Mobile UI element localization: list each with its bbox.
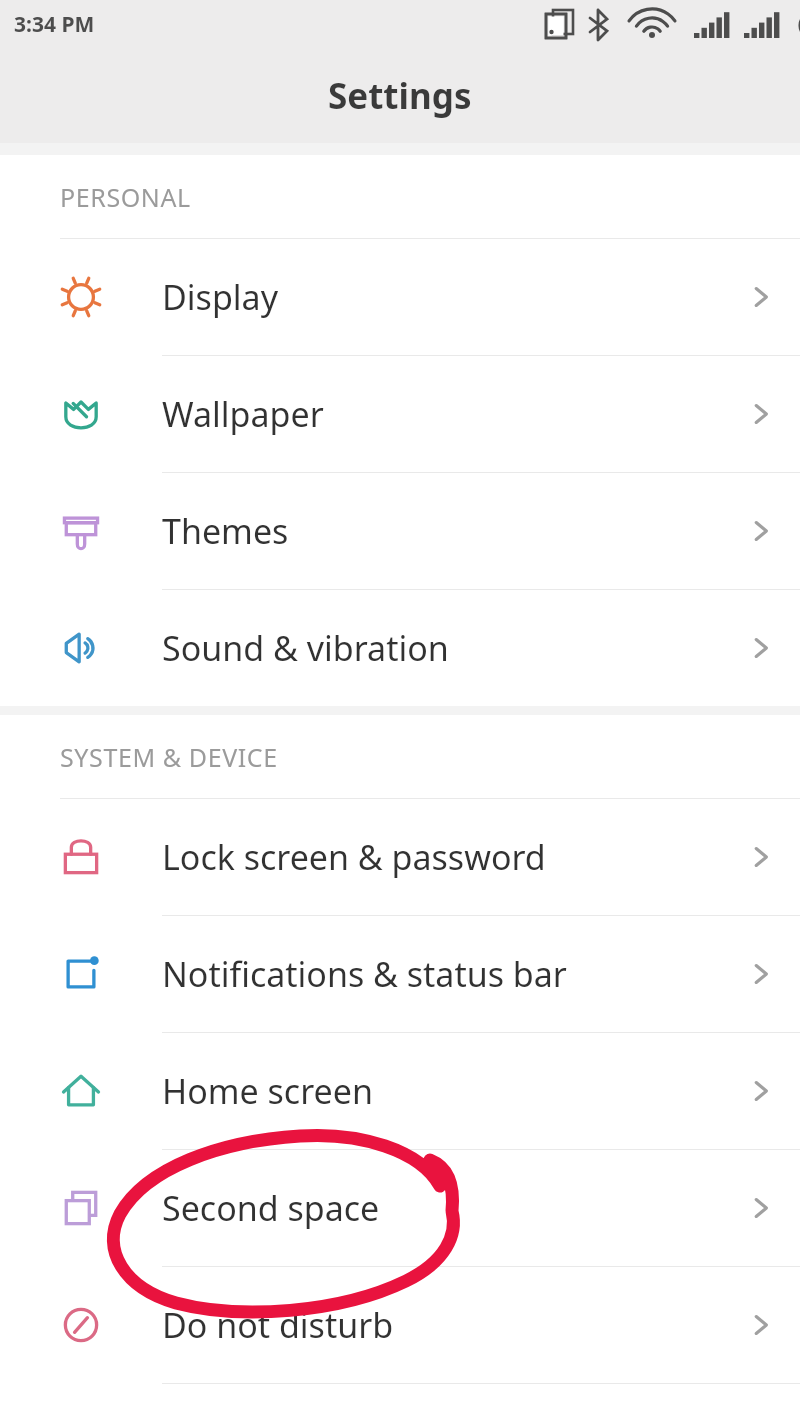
button[interactable]: Wallpaper (0, 356, 800, 473)
button[interactable]: Do not disturb (0, 1267, 800, 1384)
staticText: Themes (162, 508, 722, 554)
staticText: 3:34 PM (14, 10, 95, 39)
button[interactable]: Second space (0, 1150, 800, 1267)
staticText: Display (162, 274, 722, 320)
staticText: Home screen (162, 1068, 722, 1114)
button[interactable]: Home screen (0, 1033, 800, 1150)
staticText: Settings (328, 72, 472, 120)
staticText: PERSONAL (60, 180, 191, 214)
staticText: Do not disturb (162, 1302, 722, 1348)
button[interactable]: Sound & vibration (0, 590, 800, 706)
staticText: Second space (162, 1185, 722, 1231)
staticText: SYSTEM & DEVICE (60, 740, 278, 774)
staticText: Notifications & status bar (162, 951, 722, 997)
staticText: Sound & vibration (162, 625, 722, 671)
button[interactable]: Display (0, 239, 800, 356)
staticText: Lock screen & password (162, 834, 722, 880)
staticText: Wallpaper (162, 391, 722, 437)
button[interactable]: Themes (0, 473, 800, 590)
button[interactable]: Lock screen & password (0, 799, 800, 916)
button[interactable]: Notifications & status bar (0, 916, 800, 1033)
